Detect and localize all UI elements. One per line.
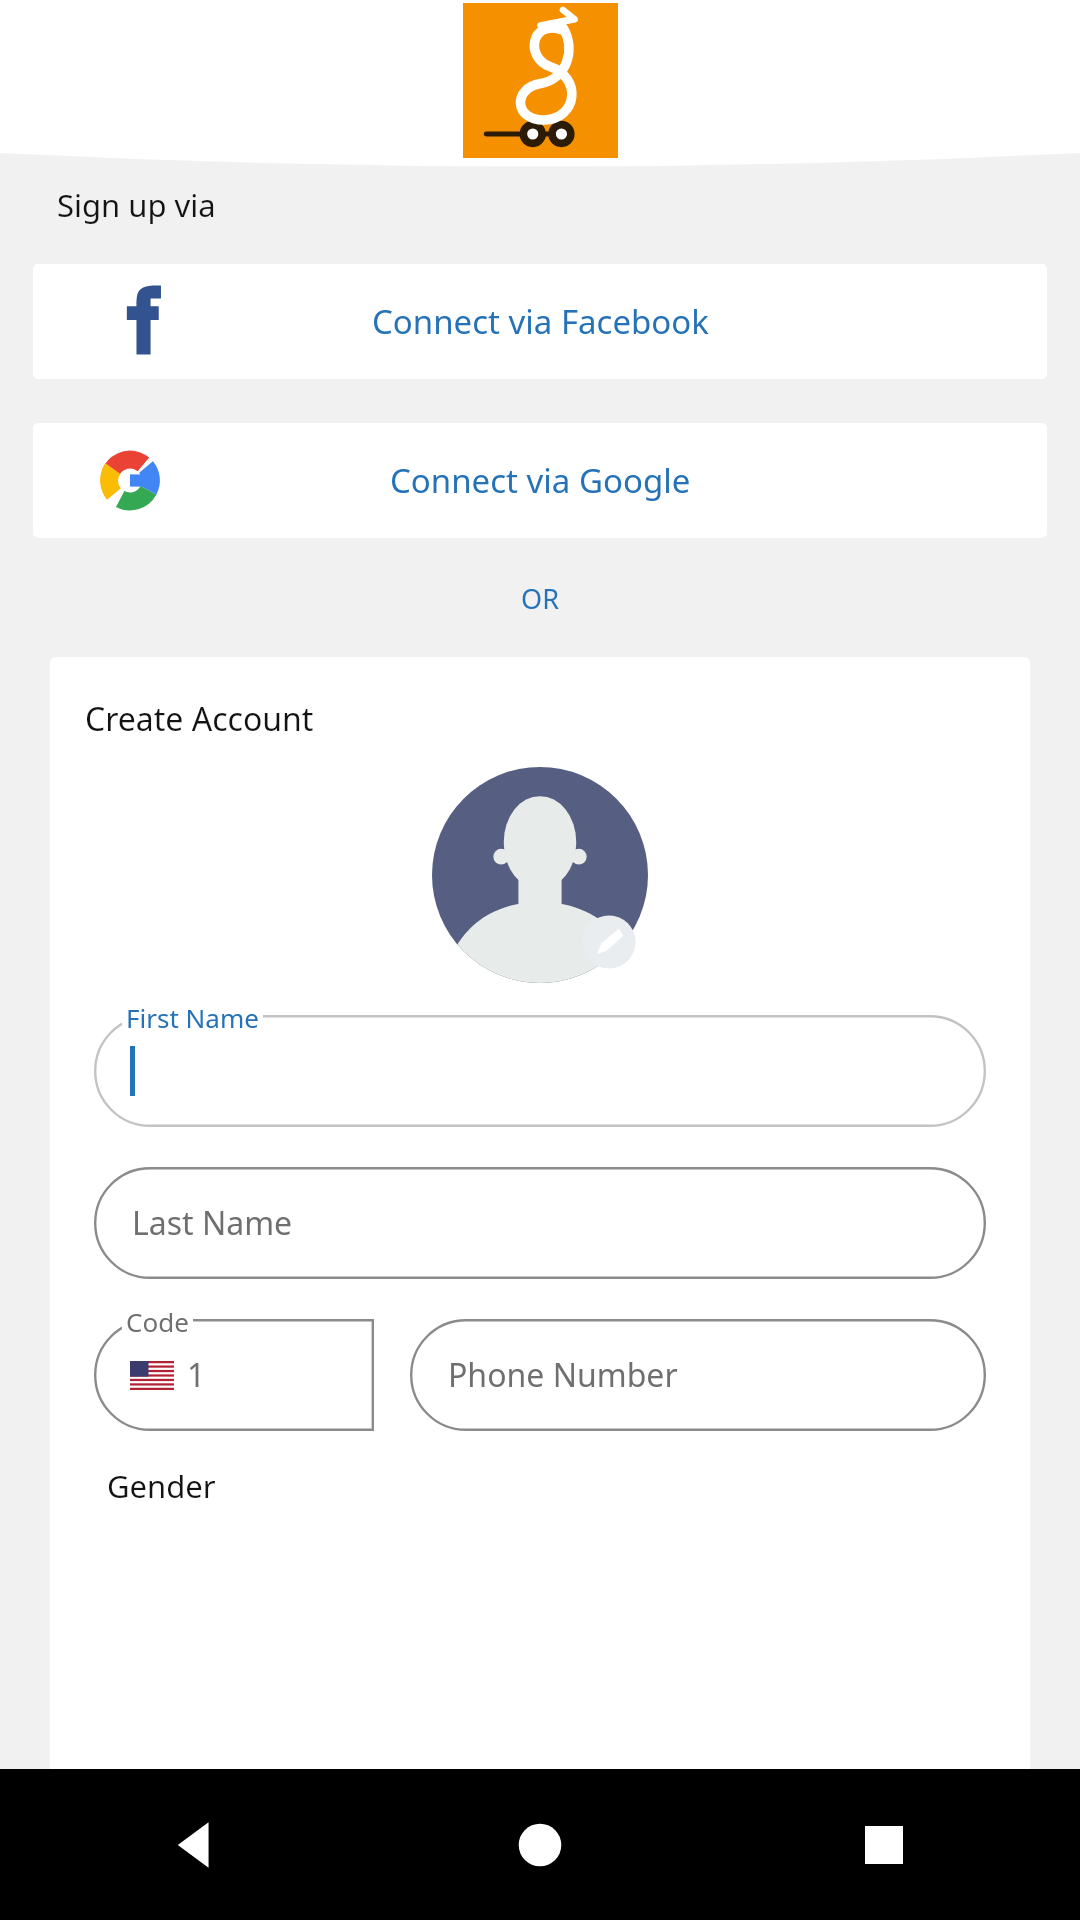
staticText: Code xyxy=(126,1304,189,1339)
button[interactable]: Recents xyxy=(846,1807,922,1883)
staticText: Last Name xyxy=(132,1201,293,1245)
button[interactable]: Last Name xyxy=(94,1167,986,1279)
button[interactable]: Back xyxy=(158,1807,234,1883)
button[interactable]: Connect via Google xyxy=(33,423,1047,538)
staticText: Phone Number xyxy=(448,1353,678,1397)
staticText: First Name xyxy=(126,1000,259,1035)
staticText: Connect via Facebook xyxy=(372,299,709,344)
staticText: Connect via Google xyxy=(390,458,691,503)
staticText: OR xyxy=(0,580,1080,617)
staticText: Create Account xyxy=(85,697,314,741)
button[interactable]: Code xyxy=(94,1319,374,1431)
button[interactable]: Home xyxy=(502,1807,578,1883)
button[interactable]: First Name xyxy=(94,1015,986,1127)
button[interactable]: Phone Number xyxy=(410,1319,986,1431)
staticText: 1 xyxy=(187,1353,206,1397)
staticText: Gender xyxy=(107,1465,216,1507)
staticText: Sign up via xyxy=(57,184,216,226)
button[interactable]: Change profile photo xyxy=(432,767,648,983)
button[interactable]: Connect via Facebook xyxy=(33,264,1047,379)
